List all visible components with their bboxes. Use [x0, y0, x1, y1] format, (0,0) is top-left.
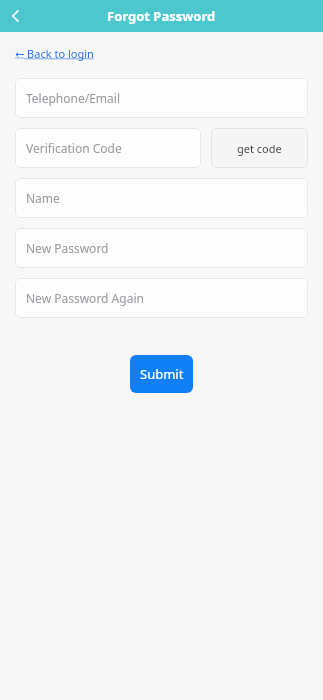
button[interactable]: New Password Again: [15, 278, 308, 318]
button[interactable]: Submit: [130, 355, 193, 393]
button[interactable]: get code: [211, 128, 308, 168]
staticText: get code: [237, 141, 282, 156]
staticText: Name: [26, 190, 60, 206]
staticText: Forgot Password: [107, 7, 216, 25]
staticText: New Password: [26, 240, 109, 256]
staticText: ← Back to login: [15, 46, 94, 61]
button[interactable]: ← Back to login: [15, 45, 94, 62]
button[interactable]: Name: [15, 178, 308, 218]
staticText: New Password Again: [26, 290, 144, 306]
staticText: Submit: [140, 365, 184, 383]
staticText: Verification Code: [26, 140, 122, 156]
button[interactable]: Back: [0, 0, 32, 32]
button[interactable]: Telephone/Email: [15, 78, 308, 118]
button[interactable]: Verification Code: [15, 128, 201, 168]
staticText: Telephone/Email: [26, 90, 120, 106]
button[interactable]: New Password: [15, 228, 308, 268]
